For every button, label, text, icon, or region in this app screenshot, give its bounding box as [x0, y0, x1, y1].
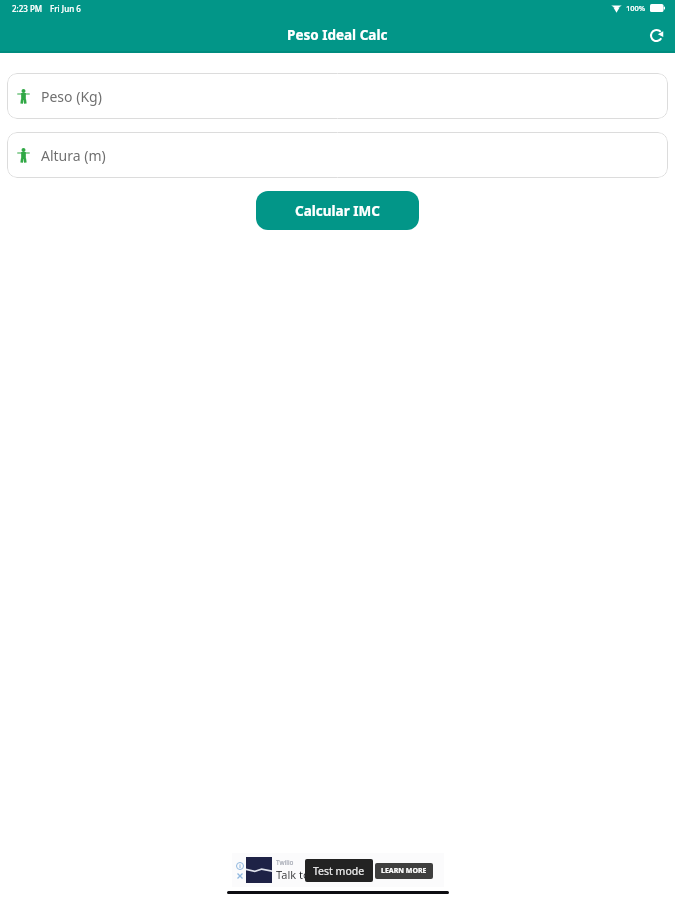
- staticText: Talk to: [276, 867, 310, 882]
- staticText: Altura (m): [41, 146, 106, 165]
- staticText: LEARN MORE: [381, 866, 427, 876]
- staticText: Peso Ideal Calc: [287, 26, 388, 44]
- button[interactable]: LEARN MORE: [375, 863, 433, 879]
- staticText: Twilio: [276, 858, 294, 867]
- staticText: 2:23 PM: [12, 3, 43, 14]
- button[interactable]: Test mode: [305, 859, 373, 882]
- staticText: Calcular IMC: [295, 202, 380, 220]
- staticText: Peso (Kg): [41, 87, 102, 106]
- staticText: Fri Jun 6: [50, 3, 81, 14]
- button[interactable]: Altura (m): [7, 132, 668, 178]
- button[interactable]: Ad info: [235, 861, 244, 870]
- button[interactable]: Peso (Kg): [7, 73, 668, 119]
- button[interactable]: Close ad: [235, 871, 244, 880]
- staticText: 100%: [626, 3, 646, 13]
- staticText: Test mode: [313, 864, 365, 878]
- button[interactable]: Calcular IMC: [256, 191, 419, 230]
- button[interactable]: Refresh: [643, 22, 669, 48]
